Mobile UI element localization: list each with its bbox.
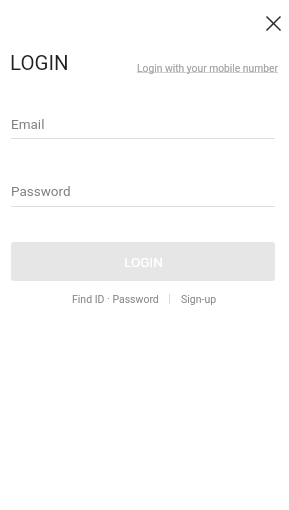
staticText: LOGIN (10, 51, 69, 75)
staticText: Sign-up (181, 293, 217, 305)
button[interactable]: Password (11, 164, 275, 199)
staticText: Email (11, 116, 45, 132)
staticText: LOGIN (124, 254, 163, 270)
button[interactable]: Login with your mobile number (129, 54, 286, 82)
staticText: Password (11, 183, 71, 199)
button[interactable]: Email (11, 97, 275, 132)
staticText: Find ID · Password (72, 293, 159, 305)
button[interactable]: Sign-up (176, 286, 222, 312)
staticText: Login with your mobile number (137, 62, 278, 74)
button[interactable]: Close (255, 5, 289, 41)
button[interactable]: Find ID · Password (67, 286, 164, 312)
